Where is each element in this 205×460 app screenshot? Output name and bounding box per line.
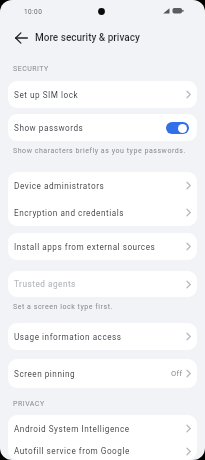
staticText: Screen pinning xyxy=(14,369,76,379)
button[interactable] xyxy=(12,29,30,47)
button[interactable] xyxy=(166,122,189,134)
button[interactable]: Screen pinning xyxy=(8,359,197,388)
staticText: Off xyxy=(171,369,183,378)
button[interactable]: Set up SIM lock xyxy=(8,81,197,108)
staticText: Usage information access xyxy=(14,332,122,342)
staticText: Autofill service from Google xyxy=(14,446,130,456)
button[interactable]: Android System Intelligence xyxy=(8,415,197,442)
button[interactable]: Autofill service from Google xyxy=(8,442,197,460)
button[interactable]: Encryption and credentials xyxy=(8,199,197,226)
staticText: 10:00 xyxy=(24,8,43,16)
staticText: More security & privacy xyxy=(35,32,140,44)
button[interactable]: Trusted agents xyxy=(8,271,197,297)
staticText: Install apps from external sources xyxy=(14,242,156,252)
staticText: Show passwords xyxy=(14,123,84,133)
staticText: PRIVACY xyxy=(13,400,45,408)
staticText: Show characters briefly as you type pass… xyxy=(13,147,186,155)
staticText: Set a screen lock type first. xyxy=(13,303,113,311)
staticText: Set up SIM lock xyxy=(14,90,79,100)
staticText: Device administrators xyxy=(14,181,105,191)
staticText: SECURITY xyxy=(13,65,49,73)
button[interactable]: Show passwords xyxy=(8,114,197,141)
staticText: Encryption and credentials xyxy=(14,208,124,218)
button[interactable]: Usage information access xyxy=(8,323,197,350)
button[interactable]: Install apps from external sources xyxy=(8,233,197,260)
button[interactable]: Device administrators xyxy=(8,172,197,199)
staticText: Android System Intelligence xyxy=(14,424,130,434)
staticText: Trusted agents xyxy=(14,279,76,289)
